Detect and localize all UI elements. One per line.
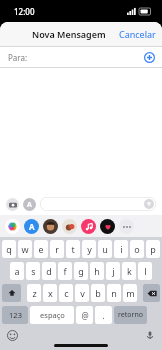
- button[interactable]: p: [146, 240, 160, 258]
- staticText: e: [38, 243, 44, 255]
- button[interactable]: b: [91, 284, 105, 302]
- button[interactable]: espaço: [30, 306, 74, 324]
- button[interactable]: Camera: [6, 198, 19, 211]
- staticText: h: [94, 265, 100, 277]
- button[interactable]: z: [27, 284, 41, 302]
- button[interactable]: f: [58, 262, 72, 280]
- button[interactable]: u: [98, 240, 112, 258]
- button[interactable]: Backspace: [143, 284, 160, 302]
- staticText: p: [150, 243, 156, 255]
- button[interactable]: l: [138, 262, 152, 280]
- staticText: z: [32, 287, 37, 299]
- button[interactable]: Add contact: [144, 52, 155, 63]
- staticText: espaço: [40, 310, 65, 320]
- staticText: y: [87, 243, 92, 255]
- staticText: 123: [9, 310, 22, 320]
- staticText: a: [14, 265, 20, 277]
- button[interactable]: d: [42, 262, 56, 280]
- button[interactable]: q: [2, 240, 16, 258]
- button[interactable]: w: [18, 240, 32, 258]
- staticText: s: [31, 265, 36, 277]
- staticText: f: [63, 265, 67, 277]
- staticText: A: [27, 200, 32, 210]
- button[interactable]: More apps: [119, 219, 134, 234]
- button[interactable]: n: [107, 284, 121, 302]
- button[interactable]: .: [95, 306, 112, 324]
- staticText: .: [102, 310, 105, 321]
- staticText: i: [120, 243, 123, 255]
- button[interactable]: Shift: [2, 284, 21, 302]
- button[interactable]: Photos: [5, 219, 20, 234]
- button[interactable]: App Store: [24, 219, 39, 234]
- button[interactable]: App Store apps: [23, 198, 36, 211]
- button[interactable]: Music: [81, 219, 96, 234]
- staticText: l: [144, 265, 147, 277]
- staticText: o: [134, 243, 140, 255]
- button[interactable]: x: [43, 284, 57, 302]
- button[interactable]: Emoji: [7, 330, 18, 341]
- button[interactable]: 123: [2, 306, 28, 324]
- staticText: t: [71, 243, 75, 255]
- button[interactable]: Send: [40, 197, 156, 211]
- staticText: j: [112, 265, 115, 277]
- button[interactable]: Para:: [0, 47, 162, 67]
- staticText: n: [111, 287, 117, 299]
- staticText: @: [81, 310, 89, 321]
- button[interactable]: i: [114, 240, 128, 258]
- button[interactable]: v: [75, 284, 89, 302]
- button[interactable]: Cancelar: [119, 28, 156, 40]
- staticText: b: [95, 287, 101, 299]
- button[interactable]: e: [34, 240, 48, 258]
- staticText: w: [21, 243, 29, 255]
- staticText: k: [127, 265, 132, 277]
- button[interactable]: s: [26, 262, 40, 280]
- button[interactable]: m: [123, 284, 137, 302]
- button[interactable]: o: [130, 240, 144, 258]
- staticText: q: [6, 243, 12, 255]
- staticText: A: [29, 221, 35, 232]
- staticText: Cancelar: [119, 28, 156, 40]
- staticText: v: [80, 287, 85, 299]
- staticText: u: [102, 243, 108, 255]
- button[interactable]: r: [50, 240, 64, 258]
- button[interactable]: g: [74, 262, 88, 280]
- button[interactable]: j: [106, 262, 120, 280]
- staticText: x: [48, 287, 53, 299]
- button[interactable]: t: [66, 240, 80, 258]
- button[interactable]: Digital Touch: [100, 219, 115, 234]
- button[interactable]: @: [76, 306, 93, 324]
- staticText: retorno: [118, 310, 143, 320]
- staticText: d: [46, 265, 52, 277]
- staticText: r: [55, 243, 59, 255]
- button[interactable]: Memoji: [43, 219, 58, 234]
- button[interactable]: k: [122, 262, 136, 280]
- staticText: Para:: [8, 52, 28, 63]
- button[interactable]: Send: [144, 199, 154, 209]
- staticText: 12:00: [14, 6, 35, 17]
- staticText: Nova Mensagem: [32, 28, 106, 40]
- button[interactable]: y: [82, 240, 96, 258]
- button[interactable]: h: [90, 262, 104, 280]
- button[interactable]: retorno: [114, 306, 147, 324]
- staticText: m: [126, 287, 135, 299]
- button[interactable]: c: [59, 284, 73, 302]
- staticText: g: [78, 265, 84, 277]
- staticText: c: [64, 287, 69, 299]
- button[interactable]: a: [10, 262, 24, 280]
- button[interactable]: Dictation: [144, 330, 155, 341]
- button[interactable]: Stickers: [62, 219, 77, 234]
